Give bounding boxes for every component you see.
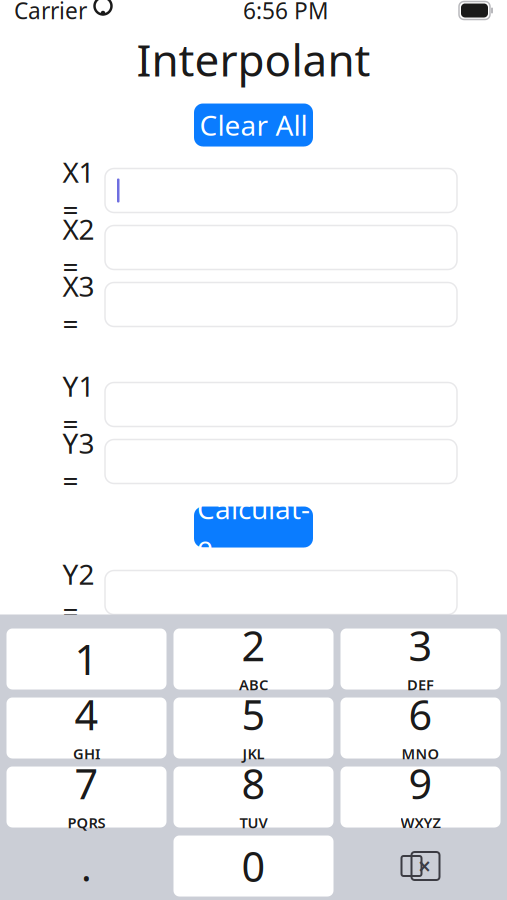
staticText: 4: [74, 687, 98, 742]
button[interactable]: 7: [6, 766, 166, 827]
button[interactable]: [105, 282, 457, 326]
button[interactable]: Calculate: [194, 506, 313, 547]
staticText: ×: [418, 851, 431, 881]
button[interactable]: 8: [173, 766, 333, 827]
staticText: ABC: [239, 675, 268, 694]
staticText: Interpolant: [136, 30, 370, 89]
staticText: 5: [241, 687, 265, 742]
button[interactable]: 9: [340, 766, 500, 827]
staticText: WXYZ: [400, 813, 440, 832]
staticText: Y3 =: [62, 424, 94, 499]
button[interactable]: 1: [6, 628, 166, 689]
staticText: 6:56 PM: [243, 0, 329, 25]
staticText: 6: [408, 687, 432, 742]
button[interactable]: [105, 382, 457, 426]
staticText: Y2 =: [62, 555, 94, 630]
staticText: TUV: [239, 813, 267, 832]
staticText: .: [81, 839, 92, 892]
staticText: PQRS: [67, 813, 105, 832]
staticText: DEF: [407, 675, 434, 694]
staticText: 8: [241, 756, 265, 811]
staticText: 2: [241, 618, 265, 673]
staticText: Clear All: [199, 106, 307, 144]
button[interactable]: Delete: [340, 835, 500, 896]
staticText: 9: [408, 756, 432, 811]
staticText: 7: [74, 756, 98, 811]
staticText: 1: [74, 632, 98, 686]
staticText: Carrier: [14, 0, 87, 25]
button[interactable]: .: [6, 835, 166, 896]
staticText: GHI: [73, 744, 100, 763]
button[interactable]: [105, 168, 457, 212]
button[interactable]: [105, 570, 457, 614]
button[interactable]: 2: [173, 628, 333, 689]
button[interactable]: 6: [340, 697, 500, 758]
staticText: Calculate: [197, 490, 310, 564]
staticText: X1 =: [62, 153, 94, 228]
staticText: 3: [408, 618, 432, 673]
button[interactable]: 4: [6, 697, 166, 758]
staticText: 0: [241, 839, 265, 893]
button[interactable]: 3: [340, 628, 500, 689]
button[interactable]: [105, 225, 457, 269]
staticText: X2 =: [62, 210, 94, 285]
staticText: X3 =: [62, 267, 94, 342]
button[interactable]: 5: [173, 697, 333, 758]
staticText: Y1 =: [62, 367, 94, 442]
button[interactable]: Clear All: [194, 103, 313, 146]
button[interactable]: [105, 439, 457, 483]
staticText: JKL: [242, 744, 264, 763]
button[interactable]: 0: [173, 835, 333, 896]
staticText: MNO: [401, 744, 439, 763]
